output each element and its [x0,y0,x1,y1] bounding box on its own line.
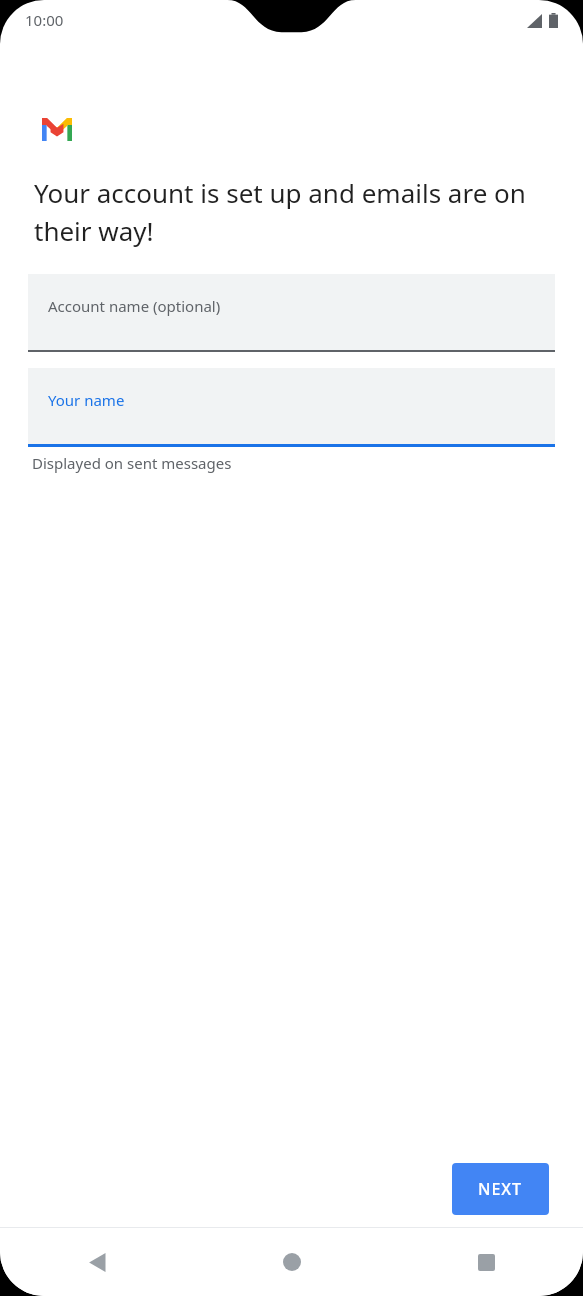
button[interactable]: Recent apps [389,1228,583,1296]
staticText: Your name [48,390,125,410]
staticText: Account name (optional) [48,296,221,316]
staticText: Displayed on sent messages [32,453,232,473]
button[interactable]: Your name [28,368,555,447]
staticText: 10:00 [25,10,64,30]
button[interactable]: Back [0,1228,195,1296]
button[interactable]: NEXT [452,1163,549,1215]
button[interactable]: Home [195,1228,389,1296]
staticText: NEXT [478,1178,523,1200]
staticText: Your account is set up and emails are on… [34,175,553,248]
button[interactable]: Account name (optional) [28,274,555,352]
